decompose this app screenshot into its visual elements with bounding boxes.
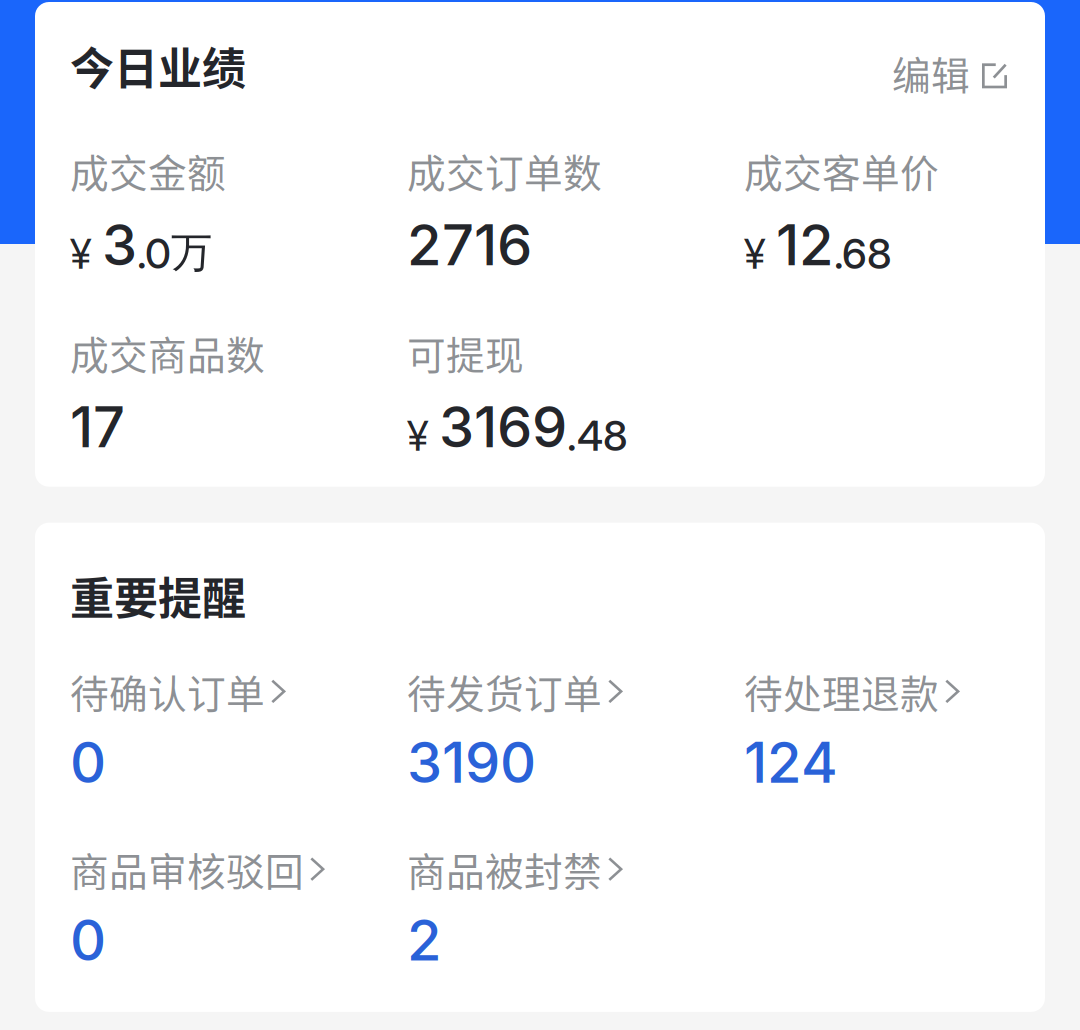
staticText: 2716: [407, 211, 532, 279]
staticText: 商品被封禁: [407, 841, 602, 897]
staticText: ¥: [70, 229, 91, 279]
button[interactable]: 待发货订单: [407, 663, 744, 796]
button[interactable]: 商品被封禁: [407, 841, 744, 974]
staticText: .0万: [137, 227, 212, 279]
button[interactable]: 待处理退款: [744, 663, 1080, 796]
staticText: 成交商品数: [70, 325, 265, 381]
button[interactable]: 待确认订单: [70, 663, 407, 796]
staticText: ¥: [407, 411, 428, 461]
staticText: 编辑: [892, 45, 970, 101]
staticText: 成交订单数: [407, 143, 602, 199]
staticText: .48: [567, 411, 628, 461]
staticText: 3169: [439, 393, 567, 461]
staticText: 3190: [407, 728, 536, 796]
staticText: 待发货订单: [407, 663, 602, 719]
staticText: .68: [834, 229, 892, 279]
staticText: 3: [102, 211, 137, 279]
staticText: 12: [776, 211, 834, 279]
staticText: ¥: [744, 229, 765, 279]
staticText: 商品审核驳回: [70, 841, 304, 897]
button[interactable]: 商品审核驳回: [70, 841, 407, 974]
button[interactable]: 编辑: [892, 38, 1007, 94]
staticText: 成交客单价: [744, 143, 939, 199]
staticText: 可提现: [407, 325, 524, 381]
staticText: 0: [70, 728, 106, 796]
staticText: 17: [70, 393, 125, 461]
staticText: 0: [70, 906, 106, 974]
staticText: 今日业绩: [70, 34, 246, 98]
staticText: 2: [407, 906, 442, 974]
staticText: 待处理退款: [744, 663, 939, 719]
staticText: 124: [744, 728, 838, 796]
staticText: 成交金额: [70, 143, 226, 199]
staticText: 重要提醒: [70, 564, 246, 627]
staticText: 待确认订单: [70, 663, 265, 719]
